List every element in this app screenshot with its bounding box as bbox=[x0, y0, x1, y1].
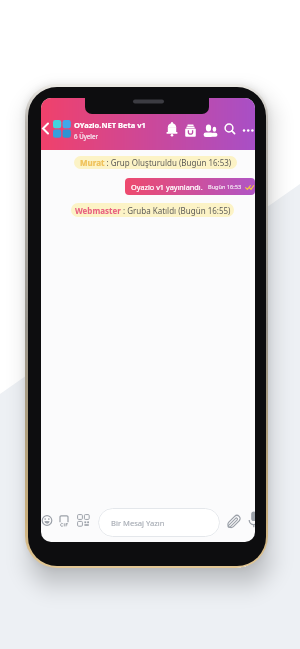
button[interactable] bbox=[224, 123, 236, 136]
staticText: Oyazio v1 yayınlandı. bbox=[131, 182, 203, 192]
button[interactable] bbox=[247, 511, 255, 529]
button[interactable] bbox=[242, 128, 255, 133]
button[interactable]: Oyazio v1 yayınlandı. bbox=[125, 178, 255, 195]
button[interactable] bbox=[59, 515, 71, 527]
button[interactable] bbox=[166, 122, 178, 138]
staticText: Bir Mesaj Yazın bbox=[111, 518, 165, 528]
button[interactable]: Murat : Grup Oluşturuldu (Bugün 16:53) bbox=[74, 156, 237, 169]
staticText: OYazio.NET Beta v1 bbox=[74, 120, 146, 130]
button[interactable]: Webmaster : Gruba Katıldı (Bugün 16:55) bbox=[71, 203, 234, 217]
staticText: Bugün 16:53 bbox=[208, 183, 242, 191]
button[interactable] bbox=[42, 515, 53, 526]
button[interactable] bbox=[203, 123, 218, 137]
staticText: Murat : Grup Oluşturuldu (Bugün 16:53) bbox=[80, 157, 232, 168]
staticText: Webmaster : Gruba Katıldı (Bugün 16:55) bbox=[75, 205, 231, 216]
button[interactable] bbox=[41, 122, 50, 135]
button[interactable] bbox=[77, 514, 90, 527]
button[interactable] bbox=[184, 124, 197, 137]
staticText: 6 Üyeler bbox=[74, 132, 98, 140]
button[interactable]: Bir Mesaj Yazın bbox=[98, 508, 220, 537]
button[interactable] bbox=[227, 513, 241, 530]
